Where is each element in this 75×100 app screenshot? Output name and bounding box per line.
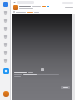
button[interactable]: Files bbox=[3, 50, 8, 55]
button[interactable]: Sender avatar bbox=[13, 5, 18, 10]
button[interactable]: Attachment preview bbox=[12, 14, 72, 100]
button[interactable]: Calendar bbox=[3, 34, 8, 39]
button[interactable]: Chat bbox=[3, 18, 8, 23]
button[interactable]: More bbox=[3, 58, 8, 63]
button[interactable]: Teams bbox=[3, 26, 8, 31]
button[interactable]: Selected app bbox=[3, 68, 9, 74]
button[interactable]: Download bbox=[61, 86, 70, 89]
button[interactable]: Home bbox=[3, 2, 8, 7]
button[interactable]: Calls bbox=[3, 42, 8, 47]
button[interactable]: Profile bbox=[3, 91, 9, 97]
button[interactable]: Activity bbox=[3, 10, 8, 15]
button[interactable]: Back bbox=[13, 1, 16, 4]
